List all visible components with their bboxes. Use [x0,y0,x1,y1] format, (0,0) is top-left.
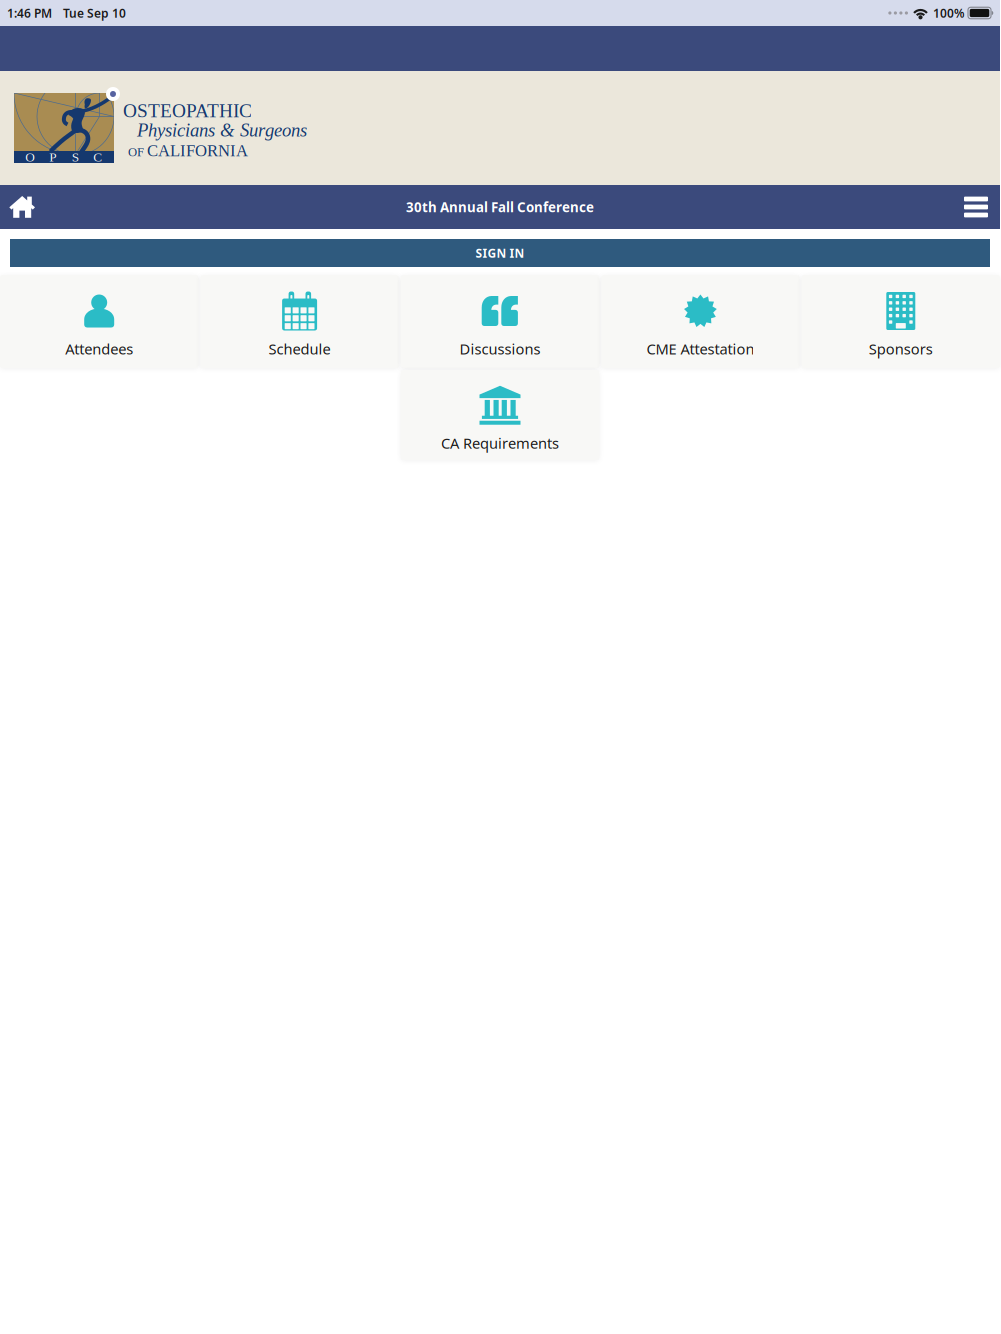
staticText: P [49,150,56,164]
button[interactable]: Home [0,185,44,229]
staticText: OSTEOPATHIC [123,100,252,121]
button[interactable]: Attendees [0,275,198,368]
button[interactable]: SIGN IN [10,239,990,267]
staticText: C [93,150,102,164]
staticText: 100% [933,5,965,21]
staticText: Attendees [65,339,133,358]
staticText: Schedule [269,339,331,358]
staticText: 1:46 PM [7,5,52,21]
staticText: Physicians & Surgeons [137,120,307,140]
staticText: 30th Annual Fall Conference [406,198,594,216]
staticText: Discussions [459,339,540,358]
staticText: OF CALIFORNIA [128,141,248,159]
staticText: CA Requirements [441,433,559,453]
button[interactable]: Schedule [200,275,399,368]
staticText: CME Attestation [646,339,754,358]
staticText: Sponsors [869,339,933,358]
staticText: O [25,150,35,164]
button[interactable]: CME Attestation [601,275,800,368]
button[interactable]: Menu [954,185,998,229]
button[interactable]: Discussions [401,275,599,368]
staticText: Tue Sep 10 [63,5,126,21]
button[interactable]: Sponsors [802,275,1000,368]
staticText: SIGN IN [475,245,524,261]
staticText: S [72,150,79,164]
button[interactable]: CA Requirements [401,370,599,460]
